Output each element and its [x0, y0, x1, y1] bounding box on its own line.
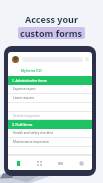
button[interactable]: Tasks [29, 156, 50, 170]
staticText: Access your [25, 13, 78, 25]
button[interactable] [8, 147, 92, 155]
staticText: Expense report [13, 87, 36, 91]
button[interactable]: Expense report [8, 85, 92, 94]
staticText: Leave request [13, 96, 34, 100]
staticText: 2. Field forms [12, 123, 33, 127]
button[interactable]: Profile [71, 156, 92, 170]
button[interactable]: Leave request [8, 94, 92, 103]
staticText: custom forms [20, 27, 83, 39]
button[interactable]: Health and safety checklist [8, 129, 92, 138]
staticText: Health and safety checklist [13, 131, 53, 135]
button[interactable]: Vehicle inspection [8, 112, 92, 120]
button[interactable]: Inbox [50, 156, 71, 170]
button[interactable]: Maintenance inspection [8, 138, 92, 147]
staticText: Maintenance inspection [13, 140, 49, 144]
staticText: My forms (12) [21, 69, 42, 73]
staticText: Vehicle inspection [13, 114, 40, 118]
staticText: 1. Administrative forms [12, 79, 47, 83]
button[interactable] [8, 103, 92, 112]
button[interactable]: Forms [8, 156, 29, 170]
